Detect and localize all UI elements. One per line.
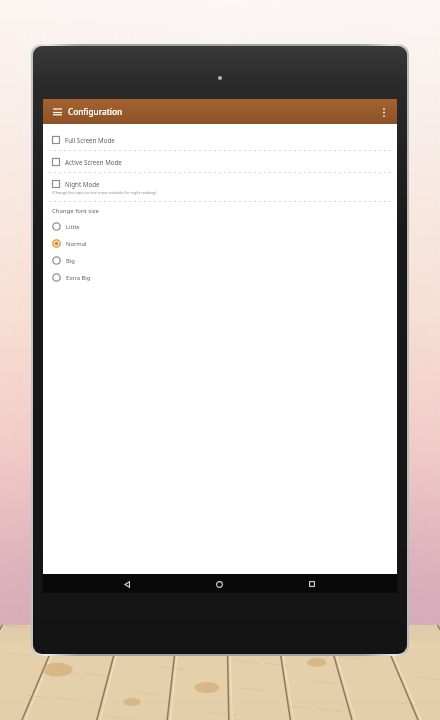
staticText: Full Screen Mode xyxy=(65,136,115,144)
staticText: Extra Big xyxy=(66,274,91,282)
button[interactable]: Recent apps xyxy=(304,576,320,592)
button[interactable]: Back xyxy=(119,576,135,592)
button[interactable]: More options xyxy=(377,105,391,119)
staticText: Active Screen Mode xyxy=(65,158,122,166)
staticText: Change font size xyxy=(52,207,99,215)
button[interactable]: Full Screen Mode xyxy=(43,130,397,149)
button[interactable]: Big xyxy=(43,252,397,269)
button[interactable]: Night Mode xyxy=(43,174,397,200)
staticText: Configuration xyxy=(68,106,123,117)
button[interactable]: Open navigation drawer xyxy=(50,105,64,119)
button[interactable]: Active Screen Mode xyxy=(43,152,397,171)
staticText: Night Mode xyxy=(65,180,100,188)
staticText: Big xyxy=(66,257,75,265)
staticText: Little xyxy=(66,223,80,231)
button[interactable]: Extra Big xyxy=(43,269,397,286)
staticText: (Change the topic to one more suitable f… xyxy=(52,190,157,195)
button[interactable]: Little xyxy=(43,218,397,235)
staticText: Normal xyxy=(66,240,87,248)
button[interactable]: Home xyxy=(211,576,227,592)
button[interactable]: Normal xyxy=(43,235,397,252)
